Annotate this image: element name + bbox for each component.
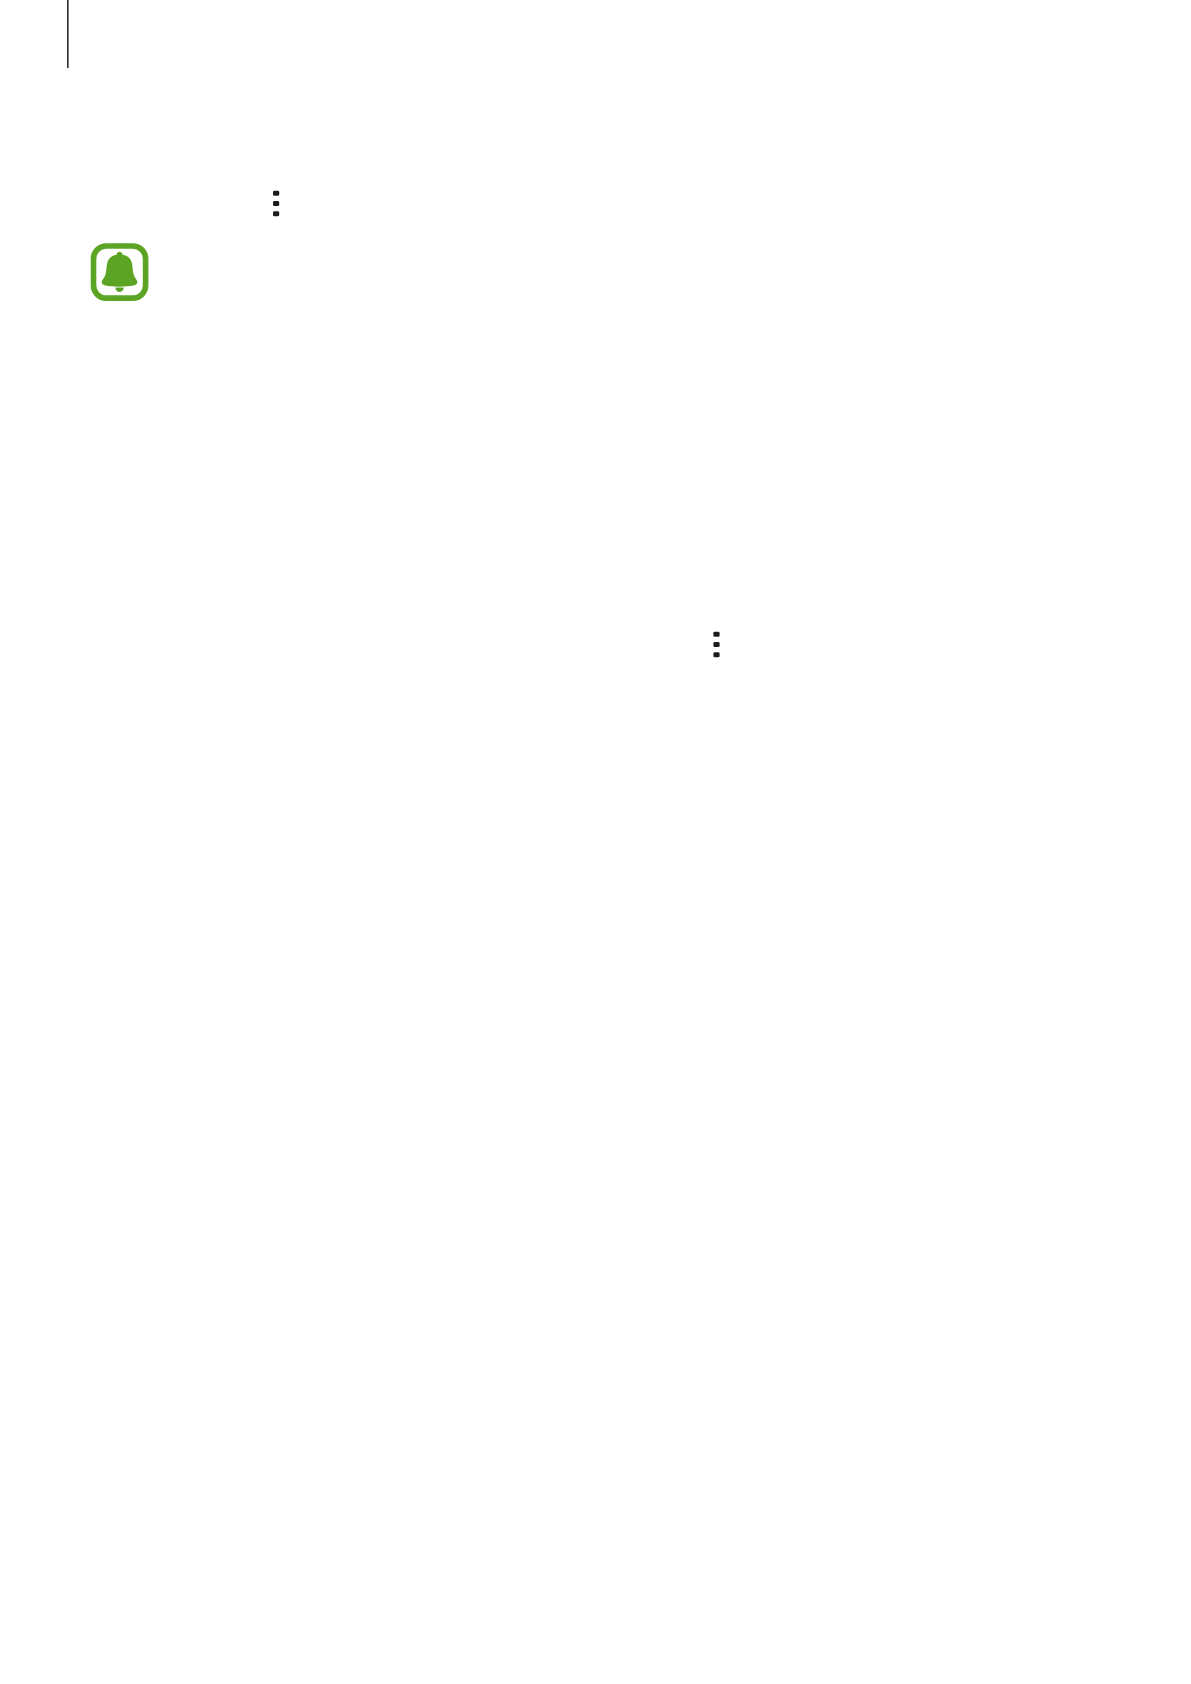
button[interactable]: Notifications xyxy=(90,243,148,301)
button[interactable]: More options xyxy=(268,186,285,221)
button[interactable]: More options xyxy=(708,627,725,662)
